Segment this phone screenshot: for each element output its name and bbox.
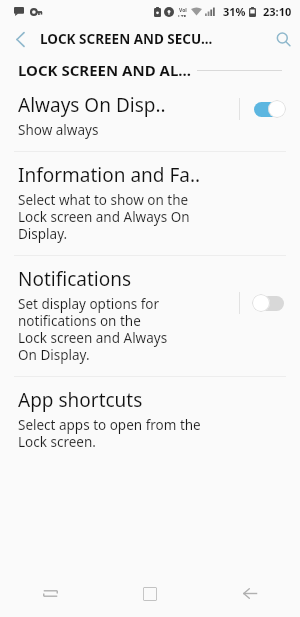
- button[interactable]: Search: [266, 22, 300, 56]
- staticText: 23:10: [263, 4, 292, 19]
- button[interactable]: Notifications: [0, 256, 300, 376]
- staticText: App shortcuts: [18, 387, 143, 413]
- staticText: LOCK SCREEN AND AL...: [18, 60, 191, 80]
- button[interactable]: Recents: [0, 570, 100, 617]
- button[interactable]: Back: [0, 22, 40, 56]
- button[interactable]: Back: [200, 570, 300, 617]
- button[interactable]: App shortcuts: [0, 377, 300, 463]
- staticText: Always On Disp..: [18, 92, 166, 118]
- staticText: Notifications: [18, 266, 132, 292]
- staticText: LOCK SCREEN AND SECU...: [40, 30, 266, 48]
- staticText: LTE: [178, 14, 187, 17]
- button[interactable]: Toggle off: [252, 294, 286, 312]
- staticText: Show always: [18, 121, 99, 139]
- button[interactable]: Information and Fa..: [0, 152, 300, 255]
- staticText: Select what to show on the Lock screen a…: [18, 191, 190, 243]
- staticText: Set display options for notifications on…: [18, 295, 168, 364]
- staticText: 31%: [223, 4, 246, 19]
- staticText: Vol: [179, 7, 187, 14]
- button[interactable]: Toggle on: [252, 100, 286, 118]
- staticText: Select apps to open from the Lock screen…: [18, 416, 201, 451]
- button[interactable]: Always On Disp..: [0, 82, 300, 151]
- button[interactable]: Home: [100, 570, 200, 617]
- staticText: Information and Fa..: [18, 162, 201, 188]
